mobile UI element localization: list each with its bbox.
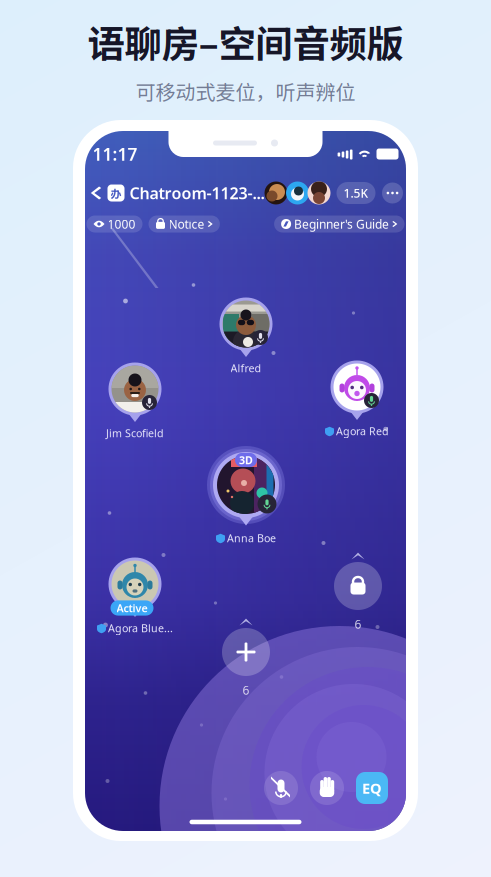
button[interactable]: Raise hand <box>298 771 344 805</box>
button[interactable]: Agora Red <box>309 339 405 435</box>
staticText: EQ <box>362 778 382 798</box>
staticText: Beginner's Guide <box>294 216 389 232</box>
button[interactable]: Jim Scofield <box>87 341 183 437</box>
staticText: 办 <box>110 185 121 201</box>
staticText: Jim Scofield <box>106 426 164 440</box>
button[interactable]: More options <box>379 180 405 206</box>
staticText: Notice <box>168 216 204 232</box>
staticText: 11:17 <box>92 142 137 165</box>
button[interactable]: Alfred <box>198 276 294 372</box>
staticText: Chatroom-1123-... <box>129 182 264 204</box>
button[interactable]: Add to seat <box>200 606 292 698</box>
button[interactable]: Back <box>85 180 107 206</box>
staticText: 语聊房–空间音频版 <box>87 14 403 69</box>
button[interactable]: Locked seat <box>312 540 404 632</box>
staticText: 6 <box>354 616 361 632</box>
button[interactable]: Notice <box>148 215 220 232</box>
staticText: Anna Boe <box>227 531 276 545</box>
button[interactable]: Equalizer <box>344 772 388 804</box>
button[interactable]: Mute microphone <box>264 771 298 805</box>
staticText: Agora Red <box>336 424 389 438</box>
staticText: Active <box>116 601 147 615</box>
staticText: 6 <box>242 682 249 698</box>
staticText: Alfred <box>230 361 261 375</box>
button[interactable]: 1000 <box>86 215 142 232</box>
staticText: 3D <box>239 453 253 467</box>
button[interactable]: 3D <box>198 437 294 533</box>
button[interactable]: Active <box>87 536 183 632</box>
staticText: Agora Blue... <box>108 621 173 635</box>
staticText: 1000 <box>107 216 135 232</box>
button[interactable]: Beginner's Guide <box>274 215 404 232</box>
staticText: 1.5K <box>343 185 368 201</box>
staticText: 可移动式麦位，听声辨位 <box>135 76 355 105</box>
